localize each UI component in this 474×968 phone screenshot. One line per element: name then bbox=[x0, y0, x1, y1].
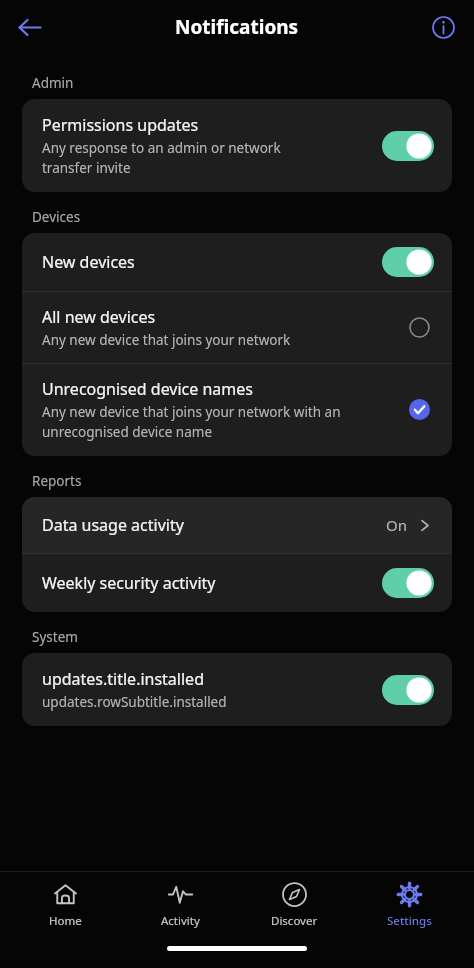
button[interactable]: Home bbox=[15, 878, 115, 933]
button[interactable]: Info bbox=[422, 6, 464, 48]
button[interactable]: All new devices bbox=[22, 292, 452, 363]
staticText: Discover bbox=[271, 913, 318, 929]
staticText: On bbox=[386, 515, 407, 535]
staticText: updates.title.installed bbox=[42, 668, 204, 690]
staticText: Permissions updates bbox=[42, 114, 199, 136]
staticText: Unrecognised device names bbox=[42, 378, 253, 400]
staticText: Devices bbox=[32, 208, 81, 226]
button[interactable]: New devices bbox=[22, 233, 452, 291]
staticText: System bbox=[32, 628, 78, 646]
staticText: updates.rowSubtitle.installed bbox=[42, 693, 227, 711]
button[interactable]: Weekly security activity bbox=[22, 554, 452, 612]
staticText: Activity bbox=[161, 913, 200, 929]
button[interactable]: Unrecognised device names bbox=[22, 364, 452, 456]
button[interactable]: Back bbox=[6, 4, 52, 50]
button[interactable]: Data usage activity bbox=[22, 497, 452, 553]
staticText: All new devices bbox=[42, 306, 156, 328]
staticText: Any new device that joins your network w… bbox=[42, 403, 341, 441]
staticText: Notifications bbox=[175, 14, 299, 40]
staticText: Admin bbox=[32, 74, 74, 92]
staticText: Home bbox=[49, 913, 82, 929]
staticText: Settings bbox=[387, 913, 432, 929]
staticText: Data usage activity bbox=[42, 514, 386, 536]
button[interactable]: Activity bbox=[130, 878, 230, 933]
staticText: Reports bbox=[32, 472, 82, 490]
button[interactable]: updates.title.installed bbox=[22, 653, 452, 726]
staticText: Weekly security activity bbox=[42, 572, 382, 594]
button[interactable]: Settings bbox=[359, 878, 459, 933]
button[interactable]: Discover bbox=[244, 878, 344, 933]
staticText: Any new device that joins your network bbox=[42, 331, 291, 349]
staticText: New devices bbox=[42, 251, 382, 273]
button[interactable]: Permissions updates bbox=[22, 99, 452, 192]
staticText: Any response to an admin or network tran… bbox=[42, 139, 281, 177]
